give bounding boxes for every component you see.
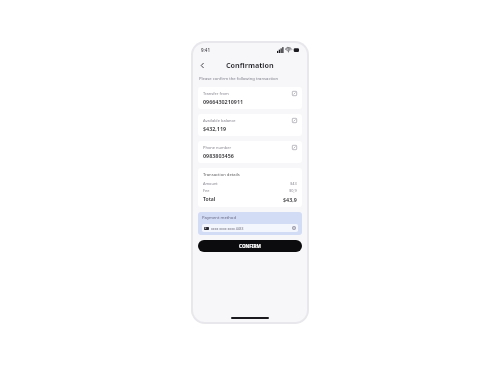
staticText: CONFIRM bbox=[239, 243, 261, 249]
staticText: Please confirm the following transaction bbox=[199, 76, 279, 82]
button[interactable]: Available balance bbox=[198, 114, 302, 136]
staticText: 0983803456 bbox=[203, 152, 234, 159]
button[interactable]: CONFIRM bbox=[198, 240, 302, 252]
staticText: 0966430210911 bbox=[203, 98, 244, 105]
staticText: $0,9 bbox=[289, 188, 297, 193]
button[interactable]: Phone number bbox=[198, 141, 302, 163]
staticText: 9:41 bbox=[201, 47, 210, 53]
staticText: Fee bbox=[203, 188, 210, 193]
staticText: Confirmation bbox=[226, 60, 274, 70]
staticText: $43 bbox=[290, 181, 297, 186]
staticText: $432,119 bbox=[203, 125, 227, 132]
staticText: Available balance bbox=[203, 118, 236, 123]
staticText: xxxx xxxx xxxx 4433 bbox=[211, 226, 244, 231]
staticText: Phone number bbox=[203, 145, 232, 150]
button[interactable]: Clear card number bbox=[292, 226, 296, 230]
button[interactable]: Transfer from bbox=[198, 87, 302, 109]
staticText: $43,9 bbox=[283, 196, 297, 203]
staticText: Total bbox=[203, 196, 216, 203]
staticText: Payment method bbox=[202, 215, 236, 221]
staticText: Amount bbox=[203, 181, 218, 186]
button[interactable]: Payment method bbox=[198, 212, 302, 235]
button[interactable]: Back bbox=[197, 60, 208, 71]
staticText: Transaction details bbox=[203, 172, 240, 178]
staticText: Transfer from bbox=[203, 91, 229, 96]
